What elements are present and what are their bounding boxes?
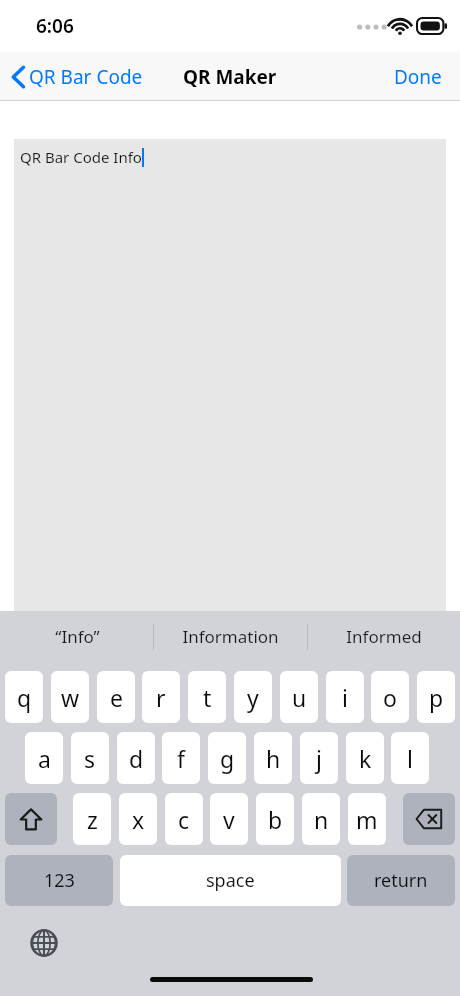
button[interactable]: j bbox=[300, 732, 338, 784]
button[interactable]: r bbox=[142, 671, 180, 723]
staticText: s bbox=[84, 743, 96, 774]
staticText: b bbox=[268, 804, 283, 835]
button[interactable]: QR Bar Code bbox=[0, 58, 153, 96]
staticText: p bbox=[429, 682, 444, 713]
button[interactable]: o bbox=[371, 671, 409, 723]
staticText: Information bbox=[182, 625, 279, 648]
button[interactable]: w bbox=[51, 671, 89, 723]
button[interactable]: return bbox=[347, 855, 455, 906]
staticText: 123 bbox=[44, 868, 75, 893]
button[interactable]: y bbox=[234, 671, 272, 723]
button[interactable]: q bbox=[5, 671, 43, 723]
button[interactable]: Backspace bbox=[403, 793, 455, 845]
staticText: l bbox=[407, 743, 413, 774]
button[interactable]: QR Bar Code Info bbox=[14, 139, 446, 611]
staticText: u bbox=[292, 682, 307, 713]
button[interactable]: i bbox=[326, 671, 364, 723]
staticText: return bbox=[374, 868, 428, 893]
staticText: n bbox=[314, 804, 329, 835]
button[interactable]: Informed bbox=[312, 611, 456, 661]
staticText: t bbox=[203, 682, 212, 713]
button[interactable]: 123 bbox=[5, 855, 113, 906]
staticText: f bbox=[177, 743, 185, 774]
button[interactable]: m bbox=[348, 793, 386, 845]
staticText: v bbox=[223, 804, 235, 835]
staticText: j bbox=[316, 743, 322, 774]
button[interactable]: f bbox=[162, 732, 200, 784]
button[interactable]: l bbox=[391, 732, 429, 784]
button[interactable]: h bbox=[254, 732, 292, 784]
button[interactable]: c bbox=[165, 793, 203, 845]
staticText: Informed bbox=[346, 625, 422, 648]
staticText: d bbox=[129, 743, 144, 774]
button[interactable]: x bbox=[119, 793, 157, 845]
button[interactable]: d bbox=[117, 732, 155, 784]
staticText: m bbox=[356, 804, 378, 835]
button[interactable]: p bbox=[417, 671, 455, 723]
staticText: QR Bar Code bbox=[29, 64, 143, 90]
staticText: 6:06 bbox=[36, 13, 74, 39]
button[interactable]: Shift bbox=[5, 793, 57, 845]
staticText: q bbox=[17, 682, 32, 713]
button[interactable]: Information bbox=[158, 611, 302, 661]
button[interactable]: Change keyboard language bbox=[22, 921, 66, 965]
button[interactable]: k bbox=[346, 732, 384, 784]
staticText: QR Bar Code Info bbox=[20, 147, 142, 167]
staticText: r bbox=[156, 682, 166, 713]
staticText: z bbox=[87, 804, 98, 835]
staticText: k bbox=[359, 743, 372, 774]
staticText: w bbox=[61, 682, 80, 713]
staticText: e bbox=[110, 682, 123, 713]
button[interactable]: v bbox=[210, 793, 248, 845]
button[interactable]: a bbox=[25, 732, 63, 784]
button[interactable]: e bbox=[97, 671, 135, 723]
staticText: Done bbox=[394, 64, 442, 90]
staticText: y bbox=[247, 682, 259, 713]
staticText: x bbox=[132, 804, 145, 835]
staticText: space bbox=[206, 868, 255, 893]
staticText: i bbox=[342, 682, 348, 713]
staticText: “Info” bbox=[55, 625, 100, 648]
staticText: o bbox=[383, 682, 397, 713]
button[interactable]: Done bbox=[376, 54, 460, 100]
button[interactable]: z bbox=[73, 793, 111, 845]
button[interactable]: b bbox=[256, 793, 294, 845]
button[interactable]: s bbox=[71, 732, 109, 784]
staticText: h bbox=[266, 743, 281, 774]
button[interactable]: n bbox=[302, 793, 340, 845]
button[interactable]: u bbox=[280, 671, 318, 723]
staticText: g bbox=[220, 743, 235, 774]
button[interactable]: t bbox=[188, 671, 226, 723]
staticText: c bbox=[178, 804, 190, 835]
staticText: a bbox=[38, 743, 51, 774]
button[interactable]: g bbox=[208, 732, 246, 784]
button[interactable]: space bbox=[120, 855, 341, 906]
button[interactable]: “Info” bbox=[5, 611, 149, 661]
staticText: QR Maker bbox=[183, 64, 277, 90]
